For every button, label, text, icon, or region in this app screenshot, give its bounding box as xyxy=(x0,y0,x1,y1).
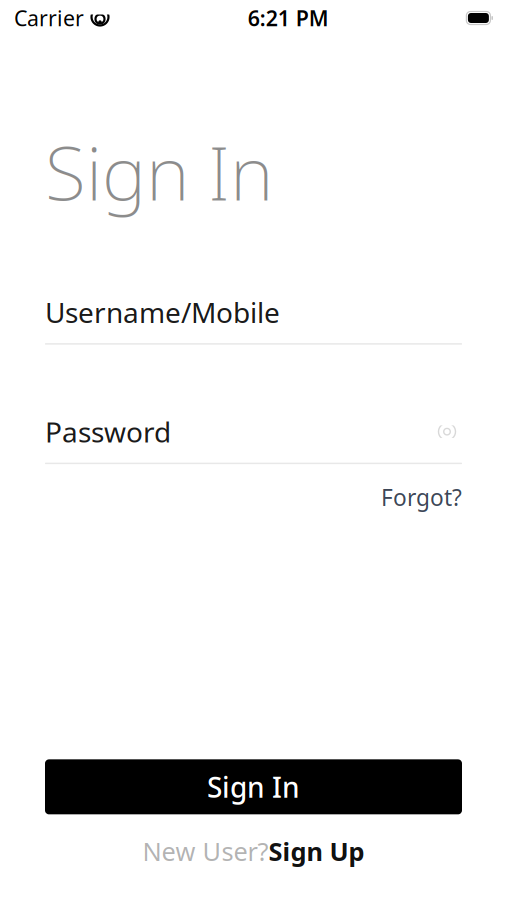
staticText: 6:21 PM xyxy=(248,4,329,32)
staticText: Password xyxy=(45,413,171,450)
button[interactable]: Forgot? xyxy=(381,482,462,512)
button[interactable]: New User? xyxy=(142,834,364,868)
staticText: Sign Up xyxy=(268,834,364,868)
staticText: Forgot? xyxy=(381,482,462,512)
button[interactable]: Show password xyxy=(432,417,462,447)
staticText: Username/Mobile xyxy=(45,294,280,331)
staticText: New User? xyxy=(142,834,268,868)
staticText: Sign In xyxy=(45,122,273,221)
staticText: Sign In xyxy=(207,768,300,805)
button[interactable]: Sign In xyxy=(45,759,462,814)
staticText: Carrier xyxy=(14,4,84,32)
